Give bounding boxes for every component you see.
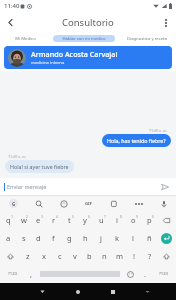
button[interactable]: Mi Medico — [2, 35, 49, 42]
button[interactable]: More — [126, 196, 151, 211]
button[interactable]: Shift right — [157, 247, 175, 265]
button[interactable]: Enter — [157, 229, 175, 247]
staticText: g — [67, 233, 72, 243]
staticText: GIF — [85, 201, 92, 207]
staticText: o — [131, 215, 136, 225]
button[interactable]: 3 — [31, 211, 46, 229]
button[interactable]: l — [125, 229, 141, 247]
staticText: ?123 — [159, 271, 169, 277]
staticText: 4 — [56, 214, 58, 219]
staticText: f — [52, 233, 55, 243]
button[interactable]: Search — [26, 196, 51, 211]
button[interactable]: Hide keyboard — [130, 283, 165, 300]
button[interactable]: Voice input — [151, 196, 176, 211]
button[interactable]: ñ — [141, 229, 157, 247]
staticText: y — [83, 215, 87, 225]
staticText: ? — [148, 251, 152, 261]
staticText: 11:40 a. m. — [8, 154, 27, 159]
button[interactable]: More options — [155, 12, 176, 33]
button[interactable]: a — [1, 229, 16, 247]
button[interactable]: g — [61, 229, 77, 247]
staticText: c — [58, 251, 62, 261]
button[interactable]: Back — [0, 12, 21, 33]
staticText: Armando Acosta Carvajal — [31, 49, 118, 59]
button[interactable]: Recents — [95, 283, 130, 300]
button[interactable]: v — [67, 247, 82, 265]
button[interactable]: Hola, has tenido fiebre? — [102, 134, 171, 147]
staticText: t — [68, 215, 71, 225]
staticText: Hola, has tenido fiebre? — [107, 137, 166, 144]
button[interactable]: 5 — [61, 211, 77, 229]
button[interactable]: Armando Acosta Carvajal — [4, 46, 172, 69]
staticText: 7 — [104, 214, 106, 219]
staticText: 11:40 a. m. — [149, 128, 168, 133]
button[interactable]: GIF — [76, 196, 101, 211]
button[interactable]: b — [82, 247, 97, 265]
staticText: p — [147, 215, 152, 225]
button[interactable]: ?123 — [1, 265, 24, 283]
staticText: ! — [133, 251, 136, 261]
button[interactable]: 1 — [1, 211, 16, 229]
button[interactable]: k — [109, 229, 125, 247]
staticText: Mi Medico — [15, 36, 36, 42]
staticText: m — [116, 251, 124, 261]
button[interactable]: ?123 — [152, 265, 175, 283]
button[interactable]: s — [16, 229, 31, 247]
staticText: ñ — [147, 233, 152, 243]
button[interactable]: x — [36, 247, 52, 265]
button[interactable]: 4 — [46, 211, 61, 229]
button[interactable]: , — [24, 265, 38, 283]
button[interactable]: Home — [60, 283, 95, 300]
button[interactable]: 0 — [141, 211, 157, 229]
button[interactable]: 6 — [77, 211, 93, 229]
button[interactable]: Hablar con mi medico — [53, 35, 115, 42]
staticText: s — [22, 233, 26, 243]
staticText: d — [36, 233, 41, 243]
button[interactable]: 8 — [109, 211, 125, 229]
button[interactable]: Emoji — [51, 196, 76, 211]
staticText: u — [99, 215, 104, 225]
button[interactable]: j — [93, 229, 109, 247]
button[interactable]: ! — [127, 247, 142, 265]
staticText: w — [21, 215, 27, 225]
button[interactable]: Emoji — [122, 265, 138, 283]
button[interactable]: Send — [158, 180, 172, 194]
staticText: 11:40 — [4, 2, 20, 10]
button[interactable]: 9 — [125, 211, 141, 229]
button[interactable]: Hola! si ayer tuve fiebre — [5, 160, 74, 173]
staticText: 1 — [11, 214, 13, 219]
button[interactable]: Stickers — [101, 196, 126, 211]
button[interactable]: c — [52, 247, 67, 265]
button[interactable]: d — [31, 229, 46, 247]
staticText: medicina interna — [31, 60, 65, 66]
button[interactable]: m — [112, 247, 127, 265]
staticText: Hola! si ayer tuve fiebre — [10, 163, 69, 170]
button[interactable]: Google — [0, 196, 26, 211]
staticText: Consultorio — [62, 16, 114, 29]
staticText: r — [52, 215, 56, 225]
staticText: q — [6, 215, 11, 225]
button[interactable]: n — [97, 247, 112, 265]
button[interactable]: ? — [142, 247, 157, 265]
button[interactable]: Backspace — [157, 211, 175, 229]
staticText: h — [83, 233, 88, 243]
button[interactable]: . — [138, 265, 152, 283]
button[interactable]: Back — [25, 283, 60, 300]
staticText: 3 — [41, 214, 43, 219]
staticText: z — [26, 251, 30, 261]
staticText: n — [102, 251, 107, 261]
button[interactable]: z — [20, 247, 36, 265]
staticText: a — [6, 233, 11, 243]
button[interactable]: Shift — [1, 247, 20, 265]
staticText: 2 — [26, 214, 28, 219]
button[interactable]: h — [77, 229, 93, 247]
button[interactable]: f — [46, 229, 61, 247]
staticText: x — [42, 251, 46, 261]
button[interactable]: 7 — [93, 211, 109, 229]
button[interactable]: 2 — [16, 211, 31, 229]
staticText: e — [36, 215, 41, 225]
button[interactable]: Diagnostico y receta — [119, 35, 174, 42]
staticText: Enviar mensaje — [7, 183, 158, 190]
staticText: , — [30, 269, 33, 279]
